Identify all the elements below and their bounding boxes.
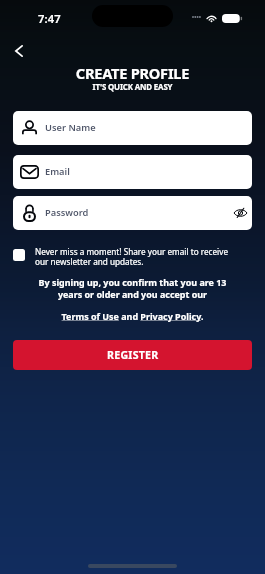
other: Show password	[233, 208, 248, 218]
button[interactable]: REGISTER	[13, 340, 252, 370]
button[interactable]: Password	[13, 196, 252, 230]
staticText: 7:47	[38, 11, 61, 26]
staticText: Never miss a moment! Share your email to…	[35, 246, 235, 268]
button[interactable]: User Name	[13, 111, 252, 145]
staticText: Email	[45, 165, 248, 178]
staticText: Password	[45, 206, 233, 219]
button[interactable]: Terms of Use and Privacy Policy.	[0, 310, 265, 322]
button[interactable]: Back	[6, 38, 31, 63]
staticText: CREATE PROFILE	[0, 63, 265, 83]
staticText: IT'S QUICK AND EASY	[0, 82, 265, 93]
button[interactable]: Email	[13, 155, 252, 189]
staticText: By signing up, you confirm that you are …	[29, 276, 236, 301]
button[interactable]: Never miss a moment! Share your email to…	[13, 246, 237, 268]
staticText: User Name	[45, 121, 248, 134]
staticText: REGISTER	[107, 348, 159, 362]
